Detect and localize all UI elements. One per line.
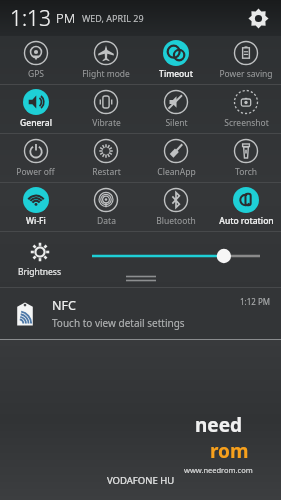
staticText: Power off — [16, 166, 55, 178]
button[interactable]: Power off — [0, 134, 71, 182]
staticText: WED, APRIL 29 — [82, 12, 144, 24]
button[interactable]: Wi-Fi — [0, 183, 71, 231]
button[interactable]: Bluetooth — [141, 183, 211, 231]
button[interactable]: Flight mode — [71, 36, 141, 84]
staticText: Flight mode — [82, 68, 130, 80]
staticText: Silent — [165, 117, 188, 129]
button[interactable]: Torch — [211, 134, 281, 182]
button[interactable]: Power saving — [211, 36, 281, 84]
staticText: CleanApp — [157, 166, 196, 178]
button[interactable]: Screenshot — [211, 85, 281, 133]
staticText: 1:13 — [10, 4, 52, 33]
staticText: www.needrom.com — [184, 465, 253, 475]
button[interactable]: General — [0, 85, 71, 133]
staticText: Restart — [92, 166, 121, 178]
staticText: General — [20, 117, 52, 129]
button[interactable]: Settings — [243, 3, 273, 33]
button[interactable]: Silent — [141, 85, 211, 133]
staticText: 1:12 PM — [240, 296, 271, 307]
staticText: Vibrate — [92, 117, 121, 129]
button[interactable]: CleanApp — [141, 134, 211, 182]
staticText: Power saving — [219, 68, 273, 80]
staticText: GPS — [28, 68, 44, 80]
staticText: PM — [56, 9, 75, 27]
staticText: Brightness — [18, 266, 61, 278]
button[interactable]: GPS — [0, 36, 71, 84]
staticText: Touch to view detail settings — [52, 316, 185, 330]
button[interactable]: Brightness slider — [88, 246, 266, 266]
staticText: need — [195, 412, 243, 438]
staticText: Data — [97, 215, 116, 227]
button[interactable]: Brightness — [18, 241, 61, 278]
button[interactable]: Timeout — [141, 36, 211, 84]
staticText: Timeout — [159, 68, 193, 80]
button[interactable]: Data — [71, 183, 141, 231]
button[interactable]: Restart — [71, 134, 141, 182]
staticText: Wi-Fi — [26, 215, 46, 227]
button[interactable]: Auto rotation — [211, 183, 281, 231]
staticText: VODAFONE HU — [107, 474, 175, 487]
staticText: Torch — [235, 166, 257, 178]
staticText: rom — [210, 438, 249, 464]
button[interactable]: NFC — [0, 288, 281, 339]
staticText: Auto rotation — [219, 215, 274, 227]
button[interactable]: Vibrate — [71, 85, 141, 133]
staticText: Screenshot — [224, 117, 269, 129]
staticText: NFC — [52, 297, 76, 314]
staticText: Bluetooth — [156, 215, 196, 227]
